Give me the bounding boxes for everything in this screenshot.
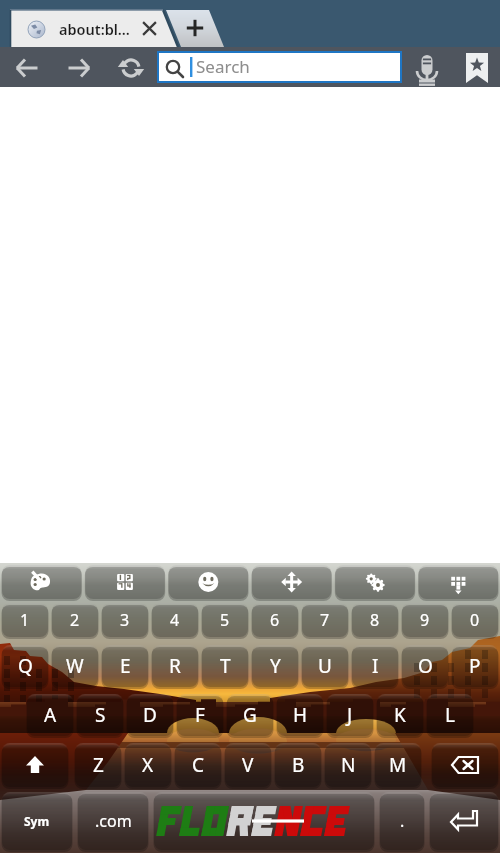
- button[interactable]: gear: [335, 565, 414, 599]
- button[interactable]: O: [402, 645, 448, 687]
- staticText: S: [95, 702, 106, 728]
- button[interactable]: move: [252, 565, 331, 599]
- staticText: Sym: [24, 813, 50, 829]
- staticText: .: [400, 810, 405, 832]
- staticText: O: [418, 653, 433, 679]
- button[interactable]: palette: [2, 565, 81, 599]
- button[interactable]: 2: [52, 603, 98, 637]
- button[interactable]: F: [177, 694, 223, 736]
- staticText: 4: [170, 609, 180, 631]
- staticText: V: [242, 752, 254, 778]
- button[interactable]: B: [275, 743, 321, 787]
- button[interactable]: V: [225, 743, 271, 787]
- staticText: 6: [270, 609, 280, 631]
- button[interactable]: 8: [352, 603, 398, 637]
- staticText: Q: [18, 653, 33, 679]
- staticText: R: [169, 653, 181, 679]
- button[interactable]: H: [277, 694, 323, 736]
- button[interactable]: 1: [2, 603, 48, 637]
- button[interactable]: K: [377, 694, 423, 736]
- button[interactable]: Back: [6, 50, 40, 84]
- staticText: A: [44, 702, 57, 728]
- button[interactable]: shift: [2, 743, 68, 787]
- staticText: .com: [95, 810, 132, 832]
- button[interactable]: .com: [78, 792, 148, 850]
- button[interactable]: Close tab: [134, 13, 164, 43]
- button[interactable]: I: [352, 645, 398, 687]
- staticText: L: [445, 702, 455, 728]
- button[interactable]: S: [77, 694, 123, 736]
- staticText: D: [143, 702, 157, 728]
- staticText: N: [341, 752, 356, 778]
- button[interactable]: grid: [419, 565, 498, 599]
- button[interactable]: G: [227, 694, 273, 736]
- staticText: B: [292, 752, 305, 778]
- button[interactable]: Z: [75, 743, 121, 787]
- button[interactable]: X: [125, 743, 171, 787]
- button[interactable]: backspace: [432, 743, 498, 787]
- button[interactable]: M: [375, 743, 421, 787]
- button[interactable]: Q: [2, 645, 48, 687]
- staticText: F: [195, 702, 205, 728]
- button[interactable]: space: [154, 792, 374, 850]
- button[interactable]: T: [202, 645, 248, 687]
- staticText: X: [142, 752, 154, 778]
- button[interactable]: Forward: [58, 50, 92, 84]
- staticText: T: [220, 653, 231, 679]
- staticText: 3: [120, 609, 130, 631]
- button[interactable]: N: [325, 743, 371, 787]
- staticText: Z: [93, 752, 104, 778]
- button[interactable]: about:bl…: [10, 10, 163, 47]
- staticText: 5: [220, 609, 230, 631]
- staticText: H: [293, 702, 308, 728]
- staticText: 2: [70, 609, 80, 631]
- button[interactable]: num: [85, 565, 164, 599]
- staticText: W: [66, 653, 84, 679]
- staticText: 8: [370, 609, 380, 631]
- button[interactable]: Bookmarks: [458, 50, 492, 84]
- button[interactable]: D: [127, 694, 173, 736]
- button[interactable]: Sym: [2, 792, 72, 850]
- staticText: K: [394, 702, 406, 728]
- staticText: M: [389, 752, 407, 778]
- staticText: 9: [420, 609, 430, 631]
- staticText: about:bl…: [59, 19, 130, 39]
- button[interactable]: J: [327, 694, 373, 736]
- staticText: 7: [320, 609, 330, 631]
- button[interactable]: Search: [157, 51, 402, 82]
- staticText: E: [120, 653, 131, 679]
- button[interactable]: 9: [402, 603, 448, 637]
- staticText: C: [192, 752, 205, 778]
- button[interactable]: 4: [152, 603, 198, 637]
- button[interactable]: 7: [302, 603, 348, 637]
- button[interactable]: C: [175, 743, 221, 787]
- button[interactable]: E: [102, 645, 148, 687]
- staticText: Search: [196, 55, 250, 78]
- button[interactable]: 6: [252, 603, 298, 637]
- button[interactable]: W: [52, 645, 98, 687]
- button[interactable]: New tab: [168, 10, 218, 47]
- staticText: 0: [470, 609, 480, 631]
- button[interactable]: 0: [452, 603, 498, 637]
- button[interactable]: R: [152, 645, 198, 687]
- staticText: J: [347, 702, 353, 728]
- staticText: Y: [270, 653, 281, 679]
- button[interactable]: P: [452, 645, 498, 687]
- staticText: G: [243, 702, 257, 728]
- button[interactable]: smile: [169, 565, 248, 599]
- staticText: I: [372, 653, 379, 679]
- staticText: P: [469, 653, 481, 679]
- button[interactable]: Y: [252, 645, 298, 687]
- button[interactable]: 3: [102, 603, 148, 637]
- button[interactable]: Voice search: [410, 50, 444, 84]
- button[interactable]: L: [427, 694, 473, 736]
- button[interactable]: Reload: [114, 50, 148, 84]
- button[interactable]: U: [302, 645, 348, 687]
- button[interactable]: A: [27, 694, 73, 736]
- staticText: U: [318, 653, 332, 679]
- staticText: 1: [20, 609, 30, 631]
- button[interactable]: enter: [430, 792, 498, 850]
- button[interactable]: .: [380, 792, 424, 850]
- button[interactable]: 5: [202, 603, 248, 637]
